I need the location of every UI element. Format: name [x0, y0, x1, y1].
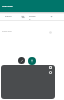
staticText: Spanish: [29, 15, 36, 21]
button[interactable]: Handwriting: [18, 57, 25, 64]
button[interactable]: Record: [48, 70, 52, 74]
button[interactable]: Enter text: [0, 28, 64, 38]
button[interactable]: Play: [48, 65, 52, 69]
staticText: Enter text: [2, 30, 12, 33]
staticText: French: [5, 15, 12, 18]
button[interactable]: More options: [48, 13, 54, 20]
button[interactable]: French: [1, 13, 16, 20]
button[interactable]: Microphone: [28, 57, 36, 65]
button[interactable]: Spanish: [29, 13, 36, 20]
button[interactable]: Swap languages: [20, 13, 26, 20]
button[interactable]: Clear text: [48, 30, 53, 35]
staticText: Translate: [2, 4, 13, 7]
